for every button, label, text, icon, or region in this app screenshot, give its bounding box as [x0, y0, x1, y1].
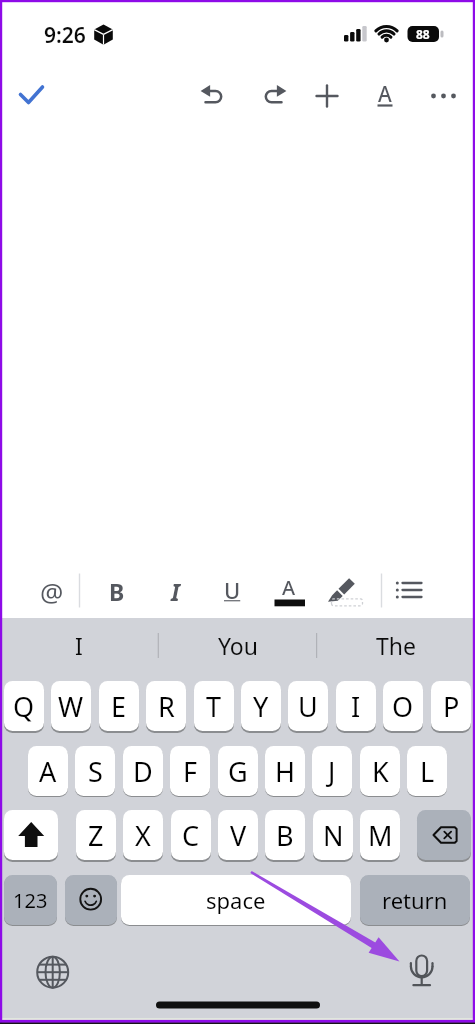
staticText: 88 — [416, 26, 430, 42]
staticText: space — [206, 885, 266, 915]
staticText: I — [351, 688, 361, 725]
button[interactable]: A — [28, 746, 68, 796]
button[interactable] — [4, 810, 58, 860]
button[interactable]: N — [313, 810, 353, 860]
button[interactable] — [417, 810, 471, 860]
staticText: 123 — [13, 887, 48, 914]
staticText: B — [109, 576, 125, 607]
button[interactable]: U — [204, 568, 260, 612]
button[interactable]: B — [265, 810, 305, 860]
button[interactable]: W — [51, 681, 91, 731]
staticText: V — [230, 817, 247, 854]
staticText: E — [111, 688, 127, 725]
button[interactable]: Y — [241, 681, 281, 731]
button[interactable]: X — [123, 810, 163, 860]
button[interactable]: Z — [76, 810, 116, 860]
staticText: D — [133, 753, 153, 790]
staticText: L — [420, 753, 435, 790]
button[interactable]: P — [431, 681, 471, 731]
button[interactable] — [324, 567, 368, 611]
staticText: return — [382, 885, 448, 915]
staticText: @ — [40, 574, 64, 609]
button[interactable] — [305, 74, 349, 118]
staticText: M — [368, 817, 393, 854]
button[interactable]: U — [288, 681, 328, 731]
button[interactable] — [31, 950, 75, 994]
button[interactable] — [10, 74, 54, 118]
staticText: I — [75, 630, 83, 661]
button[interactable]: D — [123, 746, 163, 796]
button[interactable]: I — [336, 681, 376, 731]
button[interactable]: L — [407, 746, 447, 796]
staticText: C — [182, 817, 200, 854]
staticText: U — [224, 575, 241, 605]
staticText: The — [376, 630, 416, 661]
button[interactable]: return — [360, 875, 470, 925]
button[interactable]: C — [171, 810, 211, 860]
staticText: 9:26 — [44, 21, 86, 50]
button[interactable] — [400, 946, 444, 990]
staticText: B — [276, 817, 294, 854]
button[interactable]: G — [218, 746, 258, 796]
button[interactable] — [65, 875, 117, 925]
button[interactable]: M — [360, 810, 400, 860]
staticText: T — [206, 688, 222, 725]
button[interactable]: 123 — [4, 875, 57, 925]
staticText: You — [218, 630, 258, 661]
staticText: O — [392, 688, 414, 725]
staticText: Q — [13, 688, 35, 725]
staticText: A — [282, 574, 296, 601]
staticText: G — [228, 753, 248, 790]
button[interactable]: V — [218, 810, 258, 860]
staticText: K — [372, 753, 389, 790]
button[interactable]: I — [147, 569, 203, 613]
staticText: W — [58, 688, 84, 725]
button[interactable]: E — [99, 681, 139, 731]
button[interactable]: I — [4, 620, 154, 670]
button[interactable]: J — [312, 746, 352, 796]
button[interactable] — [387, 567, 431, 611]
staticText: I — [171, 576, 180, 607]
button[interactable]: The — [321, 620, 471, 670]
button[interactable]: F — [170, 746, 210, 796]
button[interactable]: A — [357, 72, 413, 116]
button[interactable]: @ — [24, 569, 80, 613]
staticText: H — [275, 753, 296, 790]
button[interactable]: B — [89, 569, 145, 613]
button[interactable]: A — [261, 565, 317, 609]
button[interactable] — [194, 74, 238, 118]
staticText: A — [378, 80, 392, 109]
button[interactable] — [250, 74, 294, 118]
button[interactable]: T — [194, 681, 234, 731]
button[interactable]: K — [360, 746, 400, 796]
staticText: U — [298, 688, 318, 725]
button[interactable]: R — [146, 681, 186, 731]
staticText: Y — [253, 688, 269, 725]
staticText: R — [158, 688, 175, 725]
staticText: F — [183, 753, 198, 790]
button[interactable]: Q — [4, 681, 44, 731]
staticText: S — [88, 753, 103, 790]
staticText: J — [328, 753, 336, 790]
staticText: A — [39, 753, 57, 790]
staticText: Z — [88, 817, 104, 854]
staticText: P — [443, 688, 460, 725]
button[interactable]: O — [383, 681, 423, 731]
button[interactable]: H — [265, 746, 305, 796]
button[interactable]: space — [121, 875, 351, 925]
button[interactable]: S — [75, 746, 115, 796]
button[interactable]: You — [163, 620, 313, 670]
staticText: N — [323, 817, 344, 854]
staticText: X — [135, 817, 151, 854]
button[interactable] — [422, 74, 466, 118]
